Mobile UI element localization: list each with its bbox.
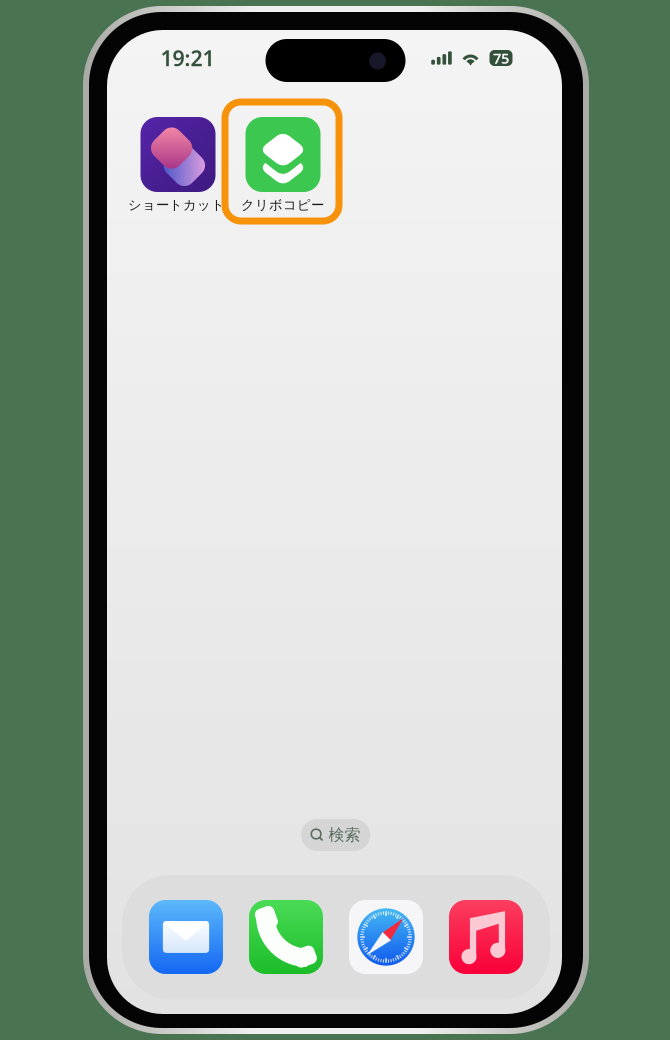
button[interactable]: ショートカット [140,117,215,192]
staticText: クリボコピー [241,197,324,213]
staticText: 75 [493,48,509,68]
button[interactable]: Safari [349,900,423,974]
button[interactable]: クリボコピー [245,117,320,192]
staticText: 検索 [329,825,361,845]
staticText: ショートカット [128,197,225,213]
staticText: 19:21 [160,44,214,72]
button[interactable]: Mail [149,900,223,974]
button[interactable]: 検索 [301,819,370,851]
button[interactable]: Music [449,900,523,974]
button[interactable]: Phone [249,900,323,974]
